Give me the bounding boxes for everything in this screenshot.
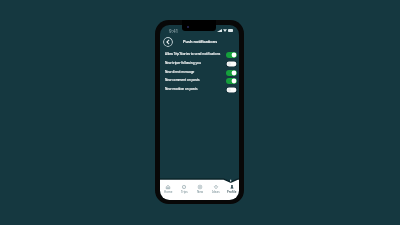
button[interactable]: New triper following you <box>160 59 239 68</box>
button[interactable]: Profile <box>224 185 239 194</box>
button[interactable]: New reaction on posts <box>160 85 239 94</box>
button[interactable]: Ideas <box>208 185 224 194</box>
staticText: Allow Trip'Stories to send notifications <box>165 52 220 56</box>
button[interactable]: Home <box>160 185 176 194</box>
staticText: New comment on posts <box>165 78 199 82</box>
button[interactable]: New <box>192 185 208 194</box>
staticText: Push notifications <box>183 39 217 44</box>
staticText: Profile <box>227 190 236 194</box>
staticText: Trips <box>181 190 188 194</box>
staticText: New triper following you <box>165 61 201 65</box>
staticText: 9:41 <box>169 28 178 34</box>
staticText: New direct message <box>165 70 194 74</box>
staticText: New <box>197 190 203 194</box>
button[interactable]: Trips <box>176 185 192 194</box>
button[interactable]: Allow Trip'Stories to send notifications <box>160 50 239 59</box>
button[interactable]: New comment on posts <box>160 76 239 85</box>
button[interactable]: Back <box>163 37 173 47</box>
button[interactable]: New direct message <box>160 68 239 77</box>
staticText: New reaction on posts <box>165 87 197 91</box>
staticText: Ideas <box>212 190 220 194</box>
staticText: Home <box>164 190 172 194</box>
